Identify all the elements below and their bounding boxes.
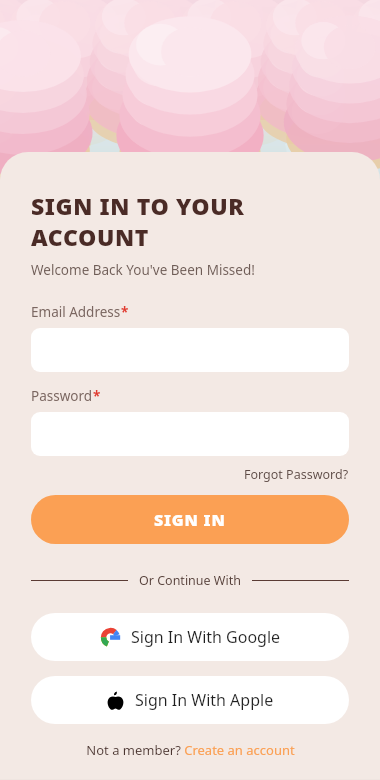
staticText: SIGN IN (154, 509, 226, 531)
button[interactable]: Not a member? Create an account (86, 741, 295, 759)
staticText: * (121, 303, 129, 321)
button[interactable]: SIGN IN (31, 495, 349, 544)
staticText: Email Address (31, 303, 121, 321)
button[interactable]: Sign In With Google (31, 613, 349, 661)
staticText: Password (31, 387, 93, 405)
staticText: Sign In With Google (131, 626, 281, 648)
button[interactable]: Forgot Password? (244, 466, 349, 483)
staticText: * (93, 387, 101, 405)
staticText: Welcome Back You've Been Missed! (31, 261, 255, 279)
staticText: Forgot Password? (244, 466, 349, 483)
staticText: SIGN IN TO YOUR ACCOUNT (31, 190, 349, 252)
staticText: Or Continue With (139, 572, 241, 589)
button[interactable]: Sign In With Apple (31, 676, 349, 724)
staticText: Not a member? Create an account (86, 741, 295, 759)
staticText: Sign In With Apple (135, 689, 274, 711)
